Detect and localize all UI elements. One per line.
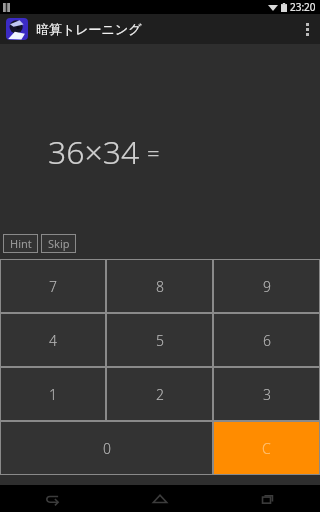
button[interactable]: Recent apps (213, 485, 320, 512)
staticText: 6 (263, 331, 271, 350)
staticText: = (147, 137, 160, 167)
button[interactable]: 7 (0, 259, 106, 313)
button[interactable]: 1 (0, 367, 106, 421)
staticText: C (262, 439, 271, 458)
staticText: 3 (263, 385, 271, 404)
staticText: 23:20 (290, 0, 316, 14)
button[interactable]: Skip (41, 234, 76, 253)
button[interactable]: Home (106, 485, 213, 512)
button[interactable]: More options (294, 14, 320, 44)
staticText: 2 (156, 385, 164, 404)
staticText: 0 (103, 439, 111, 458)
staticText: 8 (156, 277, 164, 296)
button[interactable]: 0 (0, 421, 213, 475)
staticText: Hint (10, 236, 32, 251)
button[interactable]: 5 (106, 313, 213, 367)
button[interactable]: Back (0, 485, 106, 512)
button[interactable]: 8 (106, 259, 213, 313)
staticText: 7 (49, 277, 57, 296)
staticText: 36×34 (48, 130, 140, 174)
staticText: 9 (263, 277, 271, 296)
staticText: 暗算トレーニング (36, 21, 142, 37)
staticText: Skip (48, 236, 70, 251)
staticText: 5 (156, 331, 164, 350)
button[interactable]: 4 (0, 313, 106, 367)
button[interactable]: 9 (213, 259, 320, 313)
button[interactable]: Hint (3, 234, 38, 253)
staticText: 4 (49, 331, 57, 350)
button[interactable]: C (213, 421, 320, 475)
button[interactable]: 6 (213, 313, 320, 367)
staticText: 1 (49, 385, 57, 404)
button[interactable]: 2 (106, 367, 213, 421)
button[interactable]: 3 (213, 367, 320, 421)
